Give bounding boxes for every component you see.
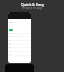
button[interactable] <box>5 64 34 72</box>
staticText: recipes in app <box>22 6 42 10</box>
button[interactable] <box>8 51 31 52</box>
button[interactable] <box>8 36 31 37</box>
button[interactable] <box>8 40 31 41</box>
button[interactable] <box>8 33 31 34</box>
staticText: Quick & Easy <box>21 2 44 7</box>
button[interactable] <box>9 29 13 31</box>
button[interactable] <box>8 47 31 48</box>
button[interactable] <box>8 12 31 19</box>
